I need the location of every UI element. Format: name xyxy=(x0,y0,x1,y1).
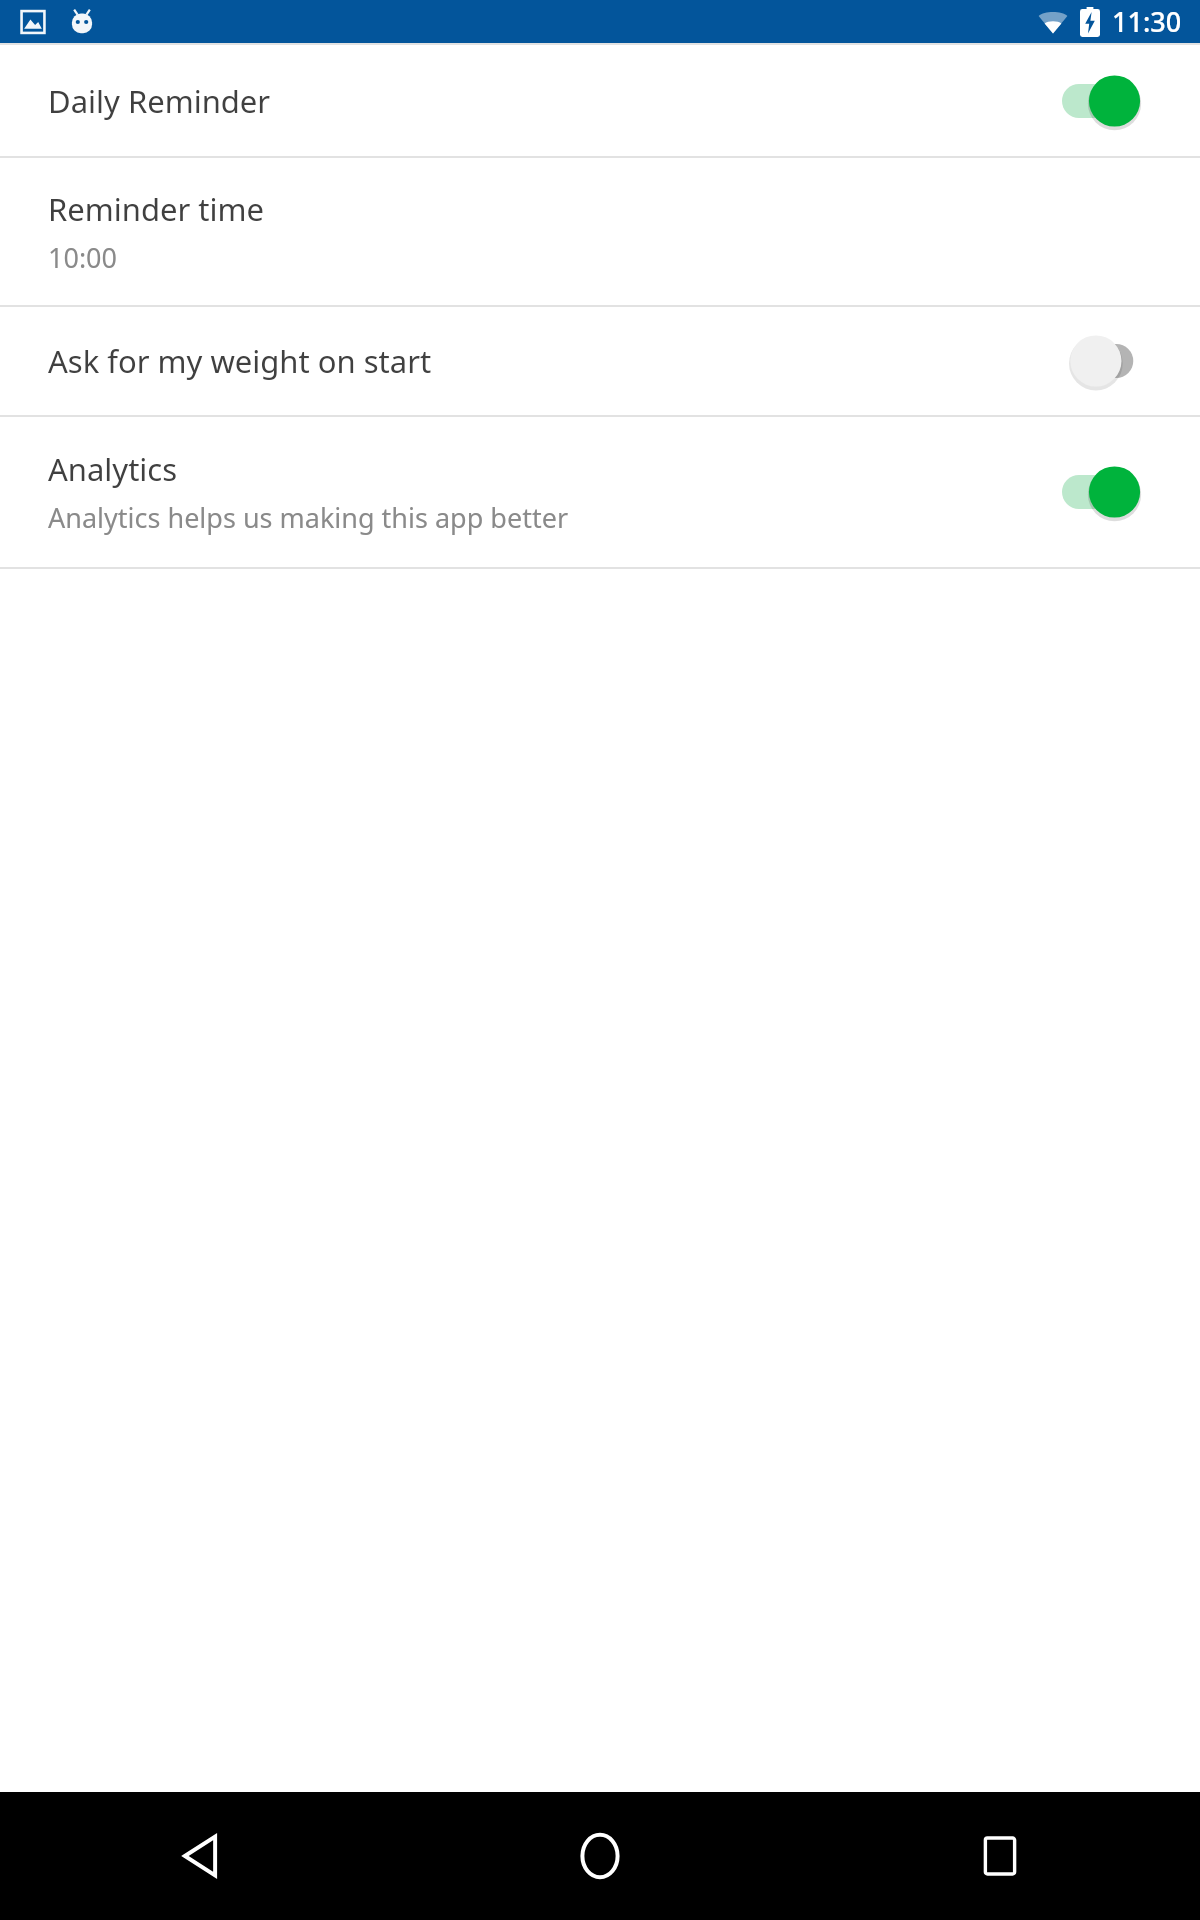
staticText: 10:00 xyxy=(48,239,118,276)
staticText: Analytics helps us making this app bette… xyxy=(48,499,569,536)
button[interactable]: Daily Reminder xyxy=(0,45,1200,156)
staticText: Ask for my weight on start xyxy=(48,340,432,382)
staticText: Reminder time xyxy=(48,188,264,230)
button[interactable]: Back xyxy=(0,1792,400,1920)
staticText: Daily Reminder xyxy=(48,80,271,122)
button[interactable]: Recent apps xyxy=(800,1792,1200,1920)
button[interactable]: Home xyxy=(400,1792,800,1920)
button[interactable]: Analytics xyxy=(0,417,1200,567)
staticText: 11:30 xyxy=(1112,3,1182,40)
button[interactable]: Toggle on xyxy=(1062,69,1152,133)
button[interactable]: Reminder time xyxy=(0,158,1200,305)
button[interactable]: Toggle off xyxy=(1062,329,1152,393)
button[interactable]: Toggle on xyxy=(1062,460,1152,524)
button[interactable]: Ask for my weight on start xyxy=(0,307,1200,415)
staticText: Analytics xyxy=(48,448,178,490)
